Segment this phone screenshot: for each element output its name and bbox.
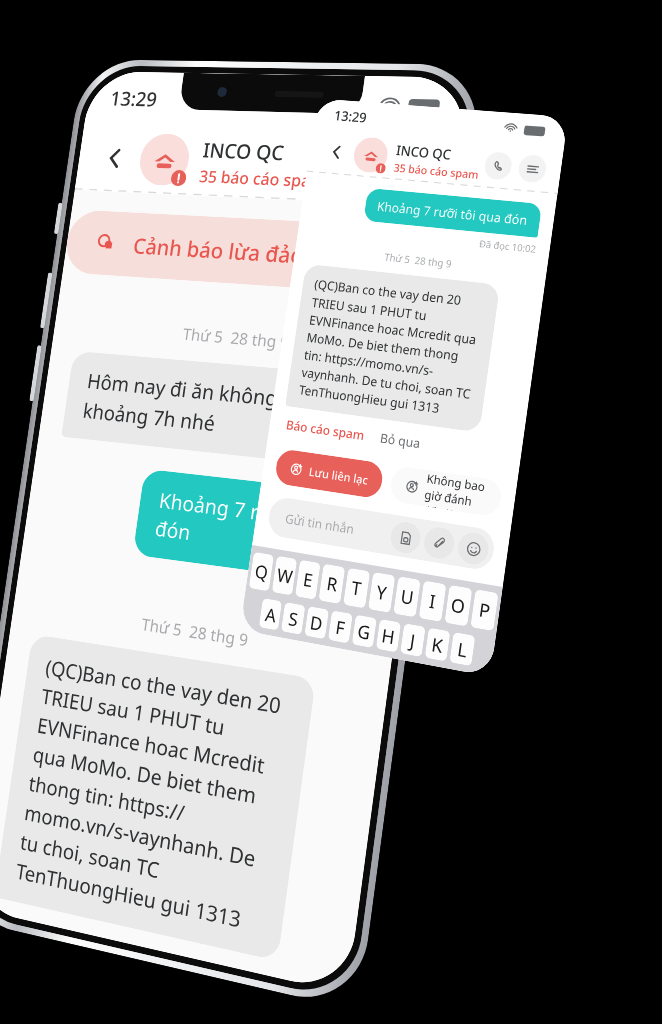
staticText: O [449, 592, 467, 619]
staticText: Gửi tin nhắn [284, 509, 355, 537]
button[interactable]: U [393, 576, 421, 617]
staticText: 35 báo cáo spam [198, 165, 328, 193]
staticText: Đã đọc 10:02 [42, 550, 374, 617]
button[interactable]: Q [249, 552, 274, 592]
staticText: Y [375, 579, 388, 605]
staticText: Cảnh báo lừa đảo [131, 231, 306, 270]
button[interactable]: O [444, 585, 472, 626]
button[interactable]: J [400, 623, 426, 657]
button[interactable]: SIM [389, 520, 422, 555]
button[interactable]: Back [321, 138, 350, 166]
button[interactable]: Menu [517, 154, 548, 184]
staticText: Lưu liên lạc [308, 463, 369, 488]
button[interactable]: Back [92, 138, 134, 178]
staticText: J [408, 628, 417, 653]
button[interactable]: E [295, 560, 321, 600]
staticText: K [430, 632, 445, 659]
staticText: (QC)Ban co the vay den 20 TRIEU sau 1 PH… [298, 275, 486, 420]
staticText: R [325, 571, 339, 597]
staticText: Bỏ qua [379, 429, 422, 451]
button[interactable]: F [328, 610, 353, 644]
button[interactable]: Bỏ qua [136, 939, 207, 962]
button[interactable]: Gửi tin nhắn [266, 495, 497, 572]
staticText: Thứ 5 28 thg 9 [307, 242, 534, 279]
staticText: Báo cáo spam [285, 416, 366, 443]
staticText: Bỏ qua [139, 942, 204, 958]
button[interactable]: H [376, 619, 401, 653]
staticText: Đã đọc 10:02 [310, 220, 537, 255]
staticText: INCO QC [395, 141, 453, 164]
button[interactable]: W [272, 556, 297, 596]
staticText: F [334, 614, 346, 640]
staticText: S [287, 606, 300, 632]
button[interactable]: (QC)Ban co the vay den 20 TRIEU sau 1 PH… [285, 264, 500, 433]
staticText: L [456, 636, 469, 663]
staticText: U [399, 583, 416, 610]
button[interactable]: L [449, 632, 475, 666]
button[interactable]: Hôm nay đi ăn không? tầm khoảng 7h nhé [61, 351, 354, 467]
staticText: 13:29 [333, 106, 369, 127]
button[interactable]: R [318, 563, 345, 604]
staticText: H [380, 623, 397, 650]
button[interactable]: Báo cáo spam [283, 413, 368, 446]
staticText: P [477, 597, 492, 624]
staticText: Báo cáo spam [0, 910, 120, 939]
button[interactable]: Call [483, 151, 513, 181]
staticText: Hôm nay đi ăn không? tầm khoảng 7h nhé [81, 367, 331, 449]
button[interactable]: Attach [422, 525, 456, 561]
button[interactable]: P [470, 589, 499, 631]
button[interactable]: Y [368, 572, 395, 613]
button[interactable]: (QC)Ban co the vay den 20 TRIEU sau 1 PH… [0, 634, 316, 961]
button[interactable]: D [304, 606, 329, 639]
button[interactable]: Lưu liên lạc [274, 448, 385, 499]
staticText: W [275, 562, 294, 589]
staticText: Thứ 5 28 thg 9 [34, 598, 367, 669]
button[interactable]: T [343, 568, 370, 608]
staticText: E [302, 567, 315, 593]
button[interactable]: Cảnh báo lừa đảo [63, 209, 409, 295]
button[interactable]: Khoảng 7 rưỡi tôi qua đón [363, 188, 542, 238]
staticText: 35 báo cáo spam [393, 160, 480, 182]
staticText: Khoảng 7 rưỡi tôi qua đón [153, 486, 364, 568]
staticText: Q [253, 559, 270, 585]
staticText: (QC)Ban co the vay den 20 TRIEU sau 1 PH… [14, 653, 293, 939]
button[interactable]: Báo cáo spam [0, 906, 123, 942]
staticText: A [264, 602, 278, 628]
button[interactable]: A [259, 598, 282, 631]
button[interactable]: Khoảng 7 rưỡi tôi qua đón [132, 469, 387, 587]
staticText: INCO QC [201, 136, 287, 167]
staticText: Khoảng 7 rưỡi tôi qua đón [376, 197, 529, 228]
staticText: D [308, 610, 325, 636]
staticText: I [428, 588, 437, 614]
staticText: Thứ 5 28 thg 9 [76, 315, 408, 363]
button[interactable]: Emoji [456, 530, 491, 567]
button[interactable]: K [425, 627, 450, 662]
button[interactable]: Không bao giờ đánh dấu là spam [389, 465, 504, 518]
button[interactable]: Bỏ qua [377, 426, 424, 454]
staticText: Không bao giờ đánh dấu là spam [423, 470, 489, 515]
button[interactable]: I [419, 580, 446, 622]
button[interactable]: G [352, 614, 377, 648]
staticText: T [350, 575, 363, 601]
staticText: 13:29 [109, 85, 159, 112]
button[interactable]: S [281, 602, 306, 635]
staticText: G [356, 618, 372, 645]
